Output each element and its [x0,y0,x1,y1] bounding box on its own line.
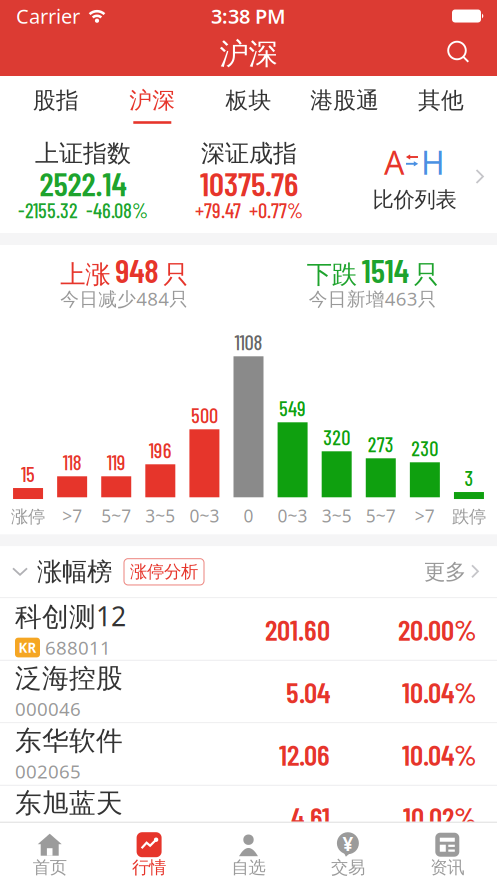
staticText: 跌停 [452,506,486,527]
staticText: KR [18,639,36,656]
staticText: 交易 [331,857,365,878]
staticText: 更多 [424,559,466,585]
staticText: 泛海控股 [15,662,123,695]
staticText: 自选 [231,857,265,878]
button[interactable]: 深证成指 [166,125,332,233]
staticText: 港股通 [310,87,379,114]
staticText: 东华软件 [15,724,123,757]
staticText: 10.02% [403,799,477,834]
staticText: 今日减少484只 [60,286,188,311]
staticText: 948 [115,250,158,290]
staticText: 深证成指 [201,139,297,168]
staticText: 3~5 [145,504,175,527]
staticText: 549 [279,395,306,420]
staticText: 上证指数 [35,139,131,168]
staticText: 首页 [33,857,67,878]
staticText: 119 [107,449,126,474]
staticText: 资讯 [430,857,464,878]
staticText: 下跌 [307,259,357,290]
staticText: 273 [368,431,394,456]
staticText: 只 [414,259,439,290]
staticText: >7 [415,504,435,527]
button[interactable]: 股指 [8,76,104,125]
staticText: >7 [62,504,82,527]
button[interactable]: 板块 [200,76,297,125]
staticText: 20.00% [398,611,477,647]
staticText: 涨停分析 [130,561,198,582]
button[interactable]: 涨停分析 [124,559,204,585]
button[interactable]: 沪深 [104,76,200,125]
staticText: 1514 [362,250,409,290]
button[interactable]: A [332,143,497,215]
button[interactable]: 港股通 [297,76,393,125]
staticText: 科创测12 [15,598,126,634]
staticText: 10.04% [402,736,477,772]
staticText: 5~7 [366,504,396,527]
staticText: 沪深 [129,87,175,114]
staticText: 10375.76 [200,163,298,203]
staticText: 行情 [132,857,166,878]
staticText: 320 [323,424,350,449]
staticText: 196 [149,437,172,462]
staticText: 5.04 [286,674,330,709]
staticText: H [421,141,445,184]
staticText: 500 [191,402,218,427]
button[interactable]: 首页 [0,833,99,878]
staticText: 涨停 [11,506,45,527]
button[interactable]: 其他 [393,76,489,125]
staticText: 2522.14 [39,163,126,203]
button[interactable]: 资讯 [398,833,497,878]
staticText: 5~7 [101,504,131,527]
staticText: 12.06 [279,736,330,772]
staticText: 1108 [234,329,262,354]
staticText: ¥ [342,831,353,856]
staticText: 股指 [33,87,79,114]
staticText: 118 [63,449,82,474]
button[interactable]: 东华软件 [0,723,497,786]
staticText: 东旭蓝天 [15,787,123,820]
button[interactable]: 自选 [199,833,298,878]
button[interactable]: Search [447,32,497,76]
staticText: 其他 [418,87,464,114]
staticText: 3:38 PM [211,3,286,29]
staticText: 涨幅榜 [37,556,112,587]
staticText: 沪深 [219,36,277,72]
staticText: A [384,141,404,184]
staticText: -2155.32 -46.08% [18,198,148,222]
staticText: 0 [243,504,253,527]
staticText: 688011 [45,635,111,660]
staticText: 比价列表 [372,187,456,213]
staticText: 15 [21,461,35,486]
button[interactable]: 泛海控股 [0,661,497,723]
button[interactable]: 行情 [99,833,199,878]
staticText: 201.60 [265,611,330,647]
staticText: 上涨 [60,259,110,290]
button[interactable]: 更多 [424,559,481,585]
staticText: 000046 [15,696,81,721]
staticText: 今日新增463只 [309,286,437,311]
staticText: 只 [163,259,188,290]
staticText: +79.47 +0.77% [195,198,303,222]
staticText: 3~5 [322,504,352,527]
staticText: Carrier [16,3,80,29]
button[interactable]: 东旭蓝天 [0,786,497,848]
staticText: 002065 [15,759,81,784]
staticText: 10.04% [402,674,477,709]
button[interactable]: 收起涨幅榜 [12,556,112,587]
button[interactable]: ¥ [298,833,398,878]
staticText: 000040 [15,821,81,846]
staticText: 4.61 [291,799,330,834]
button[interactable]: 上证指数 [0,125,166,233]
staticText: 板块 [225,87,271,114]
button[interactable]: 科创测12 [0,598,497,661]
staticText: 3 [464,465,473,490]
staticText: 0~3 [189,504,219,527]
staticText: 0~3 [278,504,308,527]
staticText: 230 [411,435,438,460]
